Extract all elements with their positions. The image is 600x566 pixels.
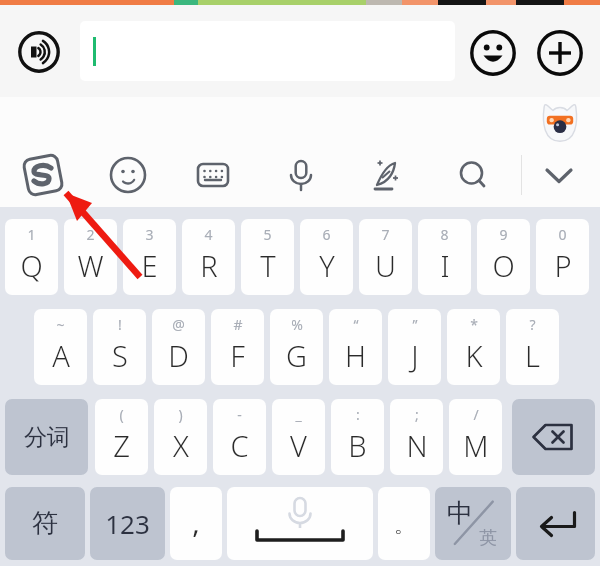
staticText: 7 <box>381 225 390 244</box>
button[interactable]: 2 <box>64 219 117 295</box>
button[interactable]: - <box>213 399 266 475</box>
staticText: ? <box>529 315 536 334</box>
staticText: @ <box>172 315 185 334</box>
button[interactable]: ( <box>95 399 148 475</box>
button[interactable]: Voice message <box>18 31 60 73</box>
button[interactable]: # <box>211 309 264 385</box>
staticText: 中 <box>447 497 473 530</box>
staticText: 。 <box>394 513 414 538</box>
button[interactable]: ! <box>93 309 146 385</box>
button[interactable]: : <box>331 399 384 475</box>
staticText: 123 <box>105 506 150 541</box>
button[interactable]: _ <box>272 399 325 475</box>
button[interactable]: ; <box>390 399 443 475</box>
button[interactable]: ? <box>506 309 559 385</box>
staticText: # <box>233 315 243 334</box>
staticText: W <box>77 246 104 285</box>
button[interactable]: Sogou input <box>20 152 66 198</box>
button[interactable]: 6 <box>300 219 353 295</box>
staticText: M <box>463 426 489 465</box>
staticText: C <box>230 426 249 465</box>
staticText: E <box>141 246 158 285</box>
button[interactable]: 1 <box>5 219 58 295</box>
button[interactable]: 。 <box>378 487 430 560</box>
staticText: - <box>237 405 242 424</box>
staticText: ( <box>119 405 124 424</box>
staticText: K <box>465 336 483 375</box>
staticText: 3 <box>145 225 154 244</box>
staticText: O <box>492 246 515 285</box>
button[interactable]: ~ <box>34 309 87 385</box>
staticText: 1 <box>27 225 36 244</box>
button[interactable]: Search <box>450 152 496 198</box>
button[interactable]: Assistant <box>538 99 582 143</box>
button[interactable]: ” <box>388 309 441 385</box>
button[interactable]: 分词 <box>5 399 88 475</box>
staticText: I <box>440 246 450 285</box>
staticText: 4 <box>204 225 213 244</box>
staticText: 6 <box>322 225 331 244</box>
button[interactable]: Enter <box>516 487 595 560</box>
staticText: 分词 <box>24 423 70 452</box>
staticText: G <box>286 336 307 375</box>
staticText: Q <box>20 246 43 285</box>
button[interactable]: 3 <box>123 219 176 295</box>
staticText: S <box>112 336 128 375</box>
staticText: * <box>470 315 478 334</box>
staticText: L <box>525 336 540 375</box>
staticText: 5 <box>263 225 272 244</box>
staticText: F <box>230 336 245 375</box>
staticText: V <box>290 426 307 465</box>
button[interactable]: * <box>447 309 500 385</box>
staticText: D <box>168 336 189 375</box>
staticText: ; <box>415 405 419 424</box>
button[interactable]: Keyboard layout <box>190 152 236 198</box>
staticText: _ <box>295 405 302 424</box>
button[interactable]: 0 <box>536 219 589 295</box>
staticText: 2 <box>86 225 95 244</box>
button[interactable]: 123 <box>90 487 165 560</box>
button[interactable]: Emoji <box>470 30 516 76</box>
staticText: A <box>52 336 70 375</box>
button[interactable]: Hide keyboard <box>536 152 582 198</box>
button[interactable]: ) <box>154 399 207 475</box>
staticText: 英 <box>479 527 497 550</box>
button[interactable] <box>80 21 455 81</box>
button[interactable]: 7 <box>359 219 412 295</box>
staticText: Y <box>319 246 335 285</box>
staticText: ” <box>412 315 418 334</box>
button[interactable]: “ <box>329 309 382 385</box>
button[interactable]: @ <box>152 309 205 385</box>
staticText: ! <box>118 315 122 334</box>
button[interactable]: 8 <box>418 219 471 295</box>
staticText: X <box>173 426 189 465</box>
staticText: Z <box>113 426 130 465</box>
staticText: “ <box>353 315 359 334</box>
staticText: N <box>406 426 428 465</box>
button[interactable]: More <box>537 30 583 76</box>
staticText: ~ <box>56 315 65 334</box>
staticText: 符 <box>32 507 58 540</box>
button[interactable]: 5 <box>241 219 294 295</box>
button[interactable]: Backspace <box>512 399 595 475</box>
button[interactable]: Space <box>227 487 373 560</box>
button[interactable]: , <box>170 487 222 560</box>
button[interactable]: / <box>449 399 502 475</box>
staticText: / <box>473 405 479 424</box>
staticText: B <box>348 426 367 465</box>
staticText: U <box>375 246 396 285</box>
staticText: % <box>291 315 303 334</box>
staticText: , <box>192 503 200 541</box>
button[interactable]: Handwriting <box>363 152 409 198</box>
button[interactable]: 符 <box>5 487 85 560</box>
staticText: 8 <box>440 225 449 244</box>
button[interactable]: 4 <box>182 219 235 295</box>
button[interactable]: 9 <box>477 219 530 295</box>
staticText: 0 <box>558 225 567 244</box>
staticText: H <box>345 336 366 375</box>
button[interactable]: 中 <box>435 487 511 560</box>
button[interactable]: Voice input <box>278 152 324 198</box>
staticText: 9 <box>499 225 508 244</box>
button[interactable]: % <box>270 309 323 385</box>
button[interactable]: Emoji panel <box>105 152 151 198</box>
